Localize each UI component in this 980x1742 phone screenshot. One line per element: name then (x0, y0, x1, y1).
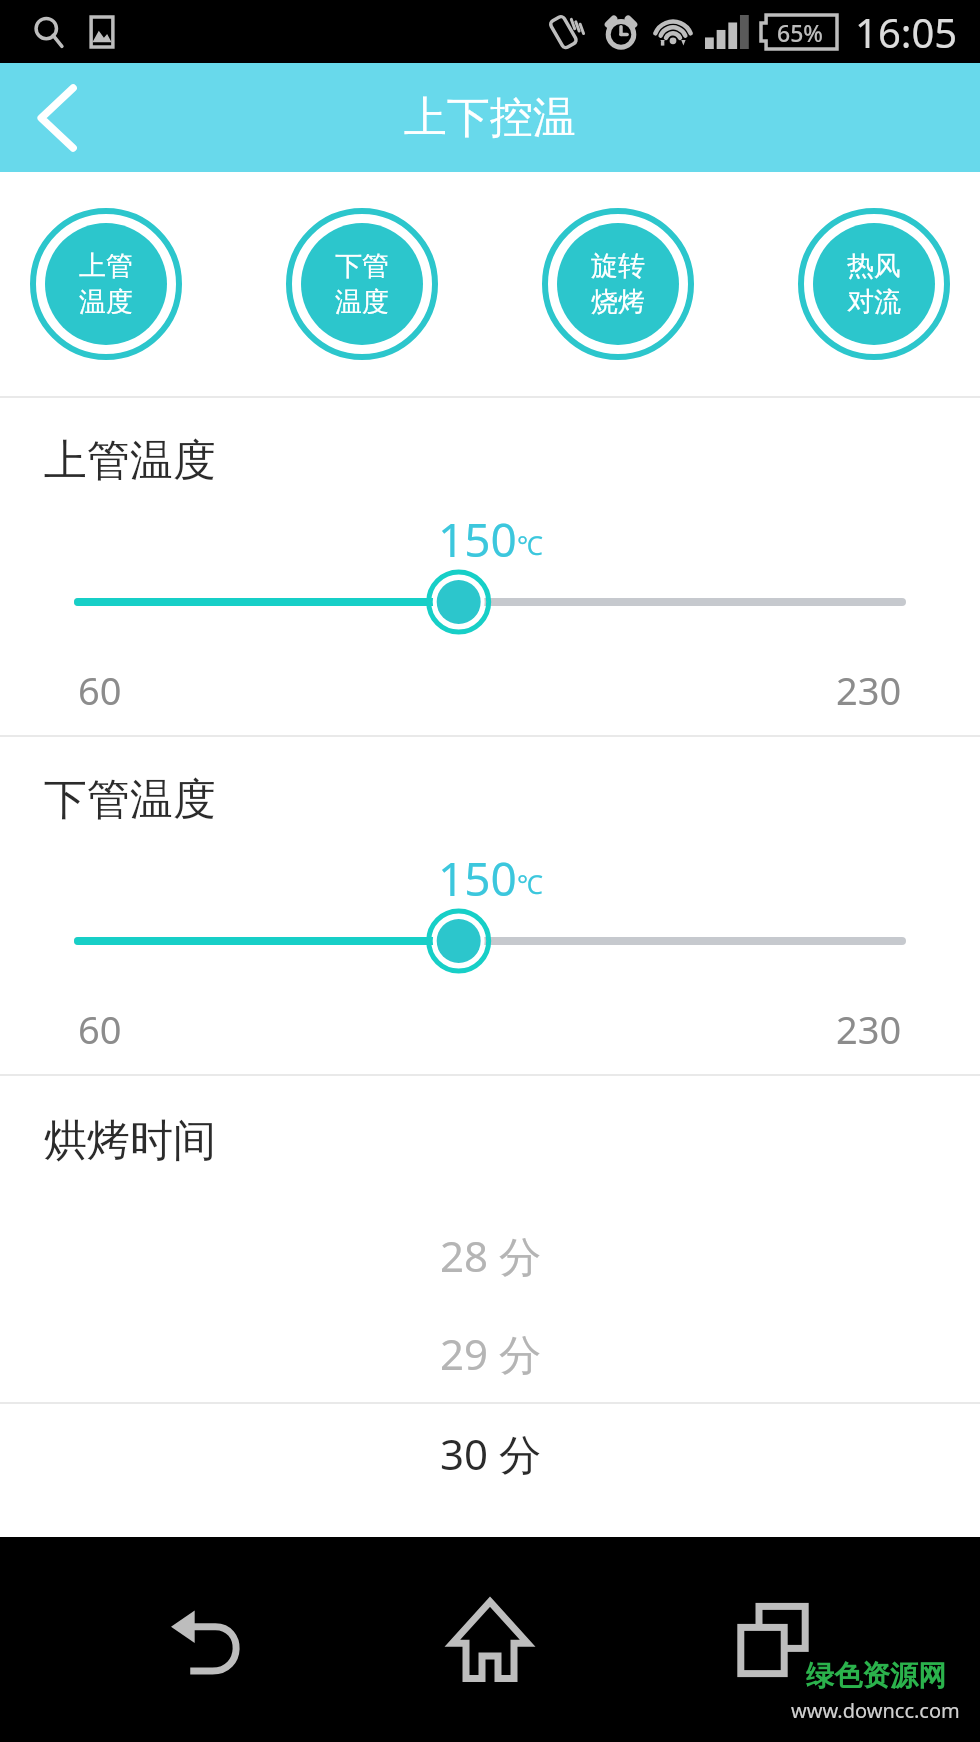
button[interactable] (0, 909, 980, 973)
staticText: 230 (836, 664, 902, 716)
staticText: 烘烤时间 (44, 1114, 216, 1168)
staticText: 下管 温度 (335, 249, 389, 319)
staticText: 上管温度 (44, 434, 216, 488)
button[interactable]: Recent apps (698, 1565, 848, 1715)
staticText: ℃ (517, 866, 543, 901)
staticText: 热风 对流 (847, 249, 901, 319)
staticText: 29 分 (440, 1325, 541, 1382)
staticText: 60 (78, 664, 122, 716)
button[interactable]: 旋转 烧烤 (542, 208, 694, 360)
staticText: 65% (777, 17, 823, 48)
staticText: 150 (438, 508, 517, 570)
button[interactable]: 28 分 (0, 1206, 980, 1304)
staticText: ℃ (517, 527, 543, 562)
staticText: 28 分 (440, 1227, 541, 1284)
button[interactable]: 上管 温度 (30, 208, 182, 360)
button[interactable]: Back (0, 63, 116, 172)
staticText: 绿色资源网 (806, 1658, 946, 1693)
staticText: 60 (78, 1003, 122, 1055)
staticText: www.downcc.com (791, 1697, 960, 1724)
staticText: 下管温度 (44, 773, 216, 827)
staticText: 230 (836, 1003, 902, 1055)
button[interactable]: 下管 温度 (286, 208, 438, 360)
staticText: 30 分 (440, 1425, 541, 1482)
button[interactable]: Back (133, 1565, 283, 1715)
button[interactable]: 29 分 (0, 1304, 980, 1402)
staticText: 上下控温 (404, 91, 576, 145)
button[interactable]: 热风 对流 (798, 208, 950, 360)
button[interactable] (0, 570, 980, 634)
staticText: 上管 温度 (79, 249, 133, 319)
staticText: 旋转 烧烤 (591, 249, 645, 319)
staticText: 16:05 (855, 5, 958, 59)
staticText: 150 (438, 847, 517, 909)
button[interactable]: 30 分 (0, 1404, 980, 1502)
button[interactable]: Home (415, 1565, 565, 1715)
